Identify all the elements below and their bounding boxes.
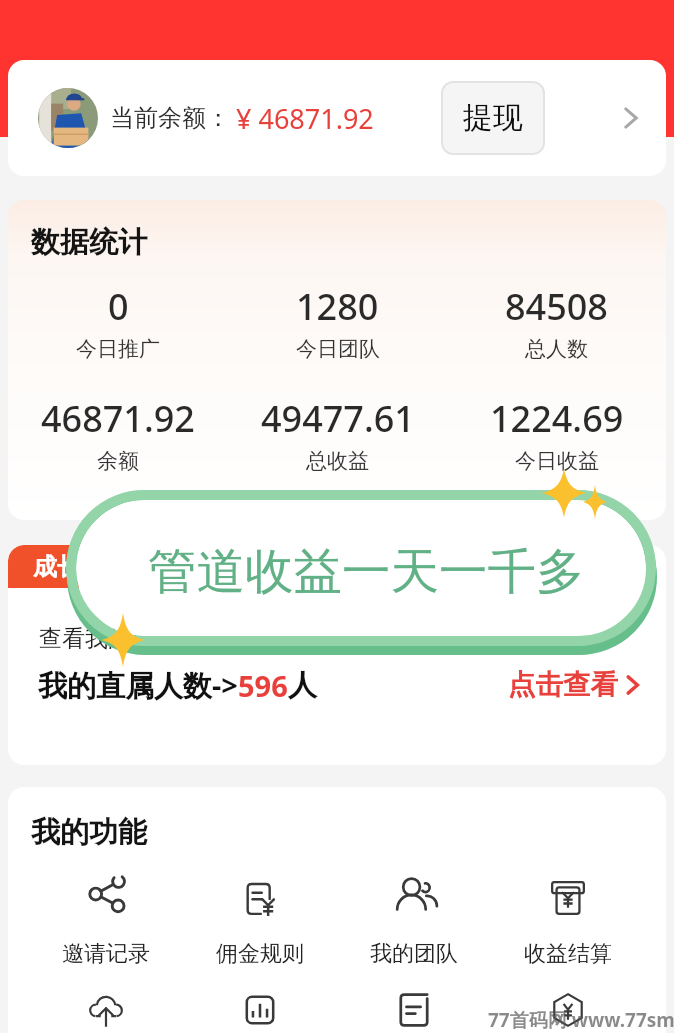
staticText: 84508 [505,282,608,331]
button[interactable]: 我的团队 [337,876,491,968]
staticText: 成长值记录 [33,552,153,582]
staticText: 我的功能 [31,814,147,851]
staticText: 1280 [296,282,379,331]
button[interactable]: 邀请记录 [29,876,183,968]
button[interactable]: 1280 [228,282,447,362]
staticText: 提现 [463,99,523,137]
staticText: 收益结算 [524,940,612,968]
staticText: 余额 [97,448,139,474]
button[interactable]: 1224.69 [447,394,666,474]
staticText: 1224.69 [490,394,624,443]
staticText: 当前余额： [110,103,230,133]
staticText: 数据统计 [31,224,147,261]
button[interactable]: 46871.92 [8,394,228,474]
staticText: 0 [108,282,129,331]
button[interactable]: More [619,106,643,130]
button[interactable]: 佣金规则 [183,876,337,968]
staticText: 49477.61 [261,394,415,443]
button[interactable]: 提现 [441,81,545,155]
staticText: 佣金规则 [216,940,304,968]
staticText: 点击查看 [508,668,618,703]
button[interactable]: Wallet [491,988,645,1032]
staticText: 我的直属人数-> [38,665,238,705]
staticText: 管道收益一天一千多 [148,541,585,602]
staticText: 总收益 [306,448,369,474]
button[interactable]: 0 [8,282,228,362]
button[interactable]: 我的直属人数-> [38,665,644,705]
button[interactable]: 成长值记录 [8,545,168,588]
staticText: 46871.92 [41,394,195,443]
staticText: 今日收益 [515,448,599,474]
staticText: 人 [288,667,317,704]
staticText: 邀请记录 [62,940,150,968]
button[interactable]: 收益结算 [491,876,645,968]
staticText: 我的团队 [370,940,458,968]
staticText: 查看我的成长值 [39,624,200,653]
button[interactable]: Statistics [183,988,337,1032]
staticText: 今日团队 [296,336,380,362]
staticText: 77首码网 www.77smw.com [488,1007,674,1033]
button[interactable]: Upload [29,988,183,1032]
staticText: 今日推广 [76,336,160,362]
button[interactable]: 84508 [447,282,666,362]
button[interactable]: Records [337,988,491,1032]
staticText: ¥ 46871.92 [236,100,374,137]
staticText: 596 [238,666,288,705]
button[interactable]: 当前余额： [8,60,666,176]
staticText: 总人数 [525,336,588,362]
button[interactable]: 49477.61 [228,394,447,474]
